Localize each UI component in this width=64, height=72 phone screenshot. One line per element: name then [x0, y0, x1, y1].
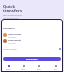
button[interactable]: Noah Bennett	[3, 38, 61, 44]
staticText: Cards	[21, 68, 26, 70]
staticText: Send money	[26, 58, 38, 61]
button[interactable]: You	[47, 63, 63, 72]
staticText: Amelia Clarke	[8, 33, 22, 36]
staticText: Quick transfers	[3, 4, 23, 13]
button[interactable]: Send money	[3, 57, 61, 61]
staticText: Send money instantly to saved contacts	[3, 14, 23, 19]
button[interactable]: Stats	[31, 63, 47, 72]
staticText: Stats	[37, 68, 41, 70]
staticText: **** 7781	[8, 42, 16, 44]
staticText: **** 4512	[8, 36, 16, 38]
staticText: Noah Bennett	[8, 39, 22, 42]
staticText: You	[54, 68, 57, 70]
button[interactable]: Amelia Clarke	[3, 32, 61, 38]
button[interactable]: Cards	[16, 63, 31, 72]
staticText: Transfer to	[3, 27, 15, 30]
staticText: Save as favourite	[3, 48, 17, 50]
staticText: Home	[6, 68, 11, 70]
button[interactable]: Home	[1, 63, 16, 72]
